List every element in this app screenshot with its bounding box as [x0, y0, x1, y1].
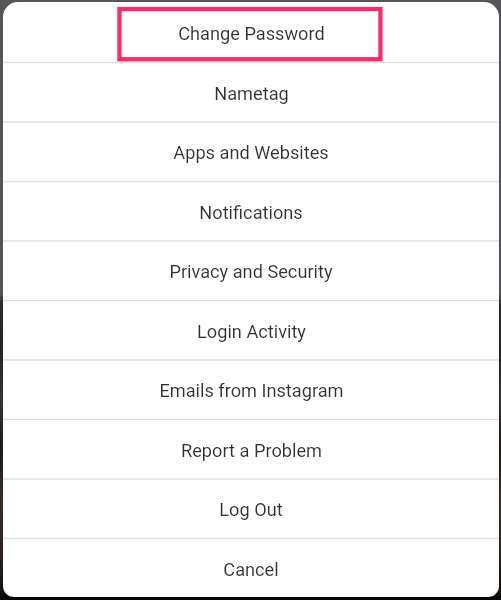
- button[interactable]: Nametag: [3, 63, 499, 123]
- staticText: Cancel: [223, 559, 279, 580]
- staticText: Login Activity: [197, 321, 306, 342]
- staticText: Privacy and Security: [169, 261, 333, 282]
- button[interactable]: Log Out: [3, 479, 499, 539]
- button[interactable]: Cancel: [3, 539, 499, 599]
- button[interactable]: Change Password: [3, 3, 499, 63]
- button[interactable]: Report a Problem: [3, 420, 499, 480]
- staticText: Nametag: [214, 83, 289, 104]
- button[interactable]: Notifications: [3, 182, 499, 242]
- button[interactable]: Login Activity: [3, 301, 499, 361]
- staticText: Emails from Instagram: [159, 380, 344, 401]
- button[interactable]: Privacy and Security: [3, 241, 499, 301]
- staticText: Change Password: [178, 23, 325, 44]
- button[interactable]: Apps and Websites: [3, 122, 499, 182]
- staticText: Log Out: [219, 499, 283, 520]
- staticText: Apps and Websites: [173, 142, 329, 163]
- button[interactable]: Emails from Instagram: [3, 360, 499, 420]
- staticText: Notifications: [199, 202, 303, 223]
- staticText: Report a Problem: [181, 440, 322, 461]
